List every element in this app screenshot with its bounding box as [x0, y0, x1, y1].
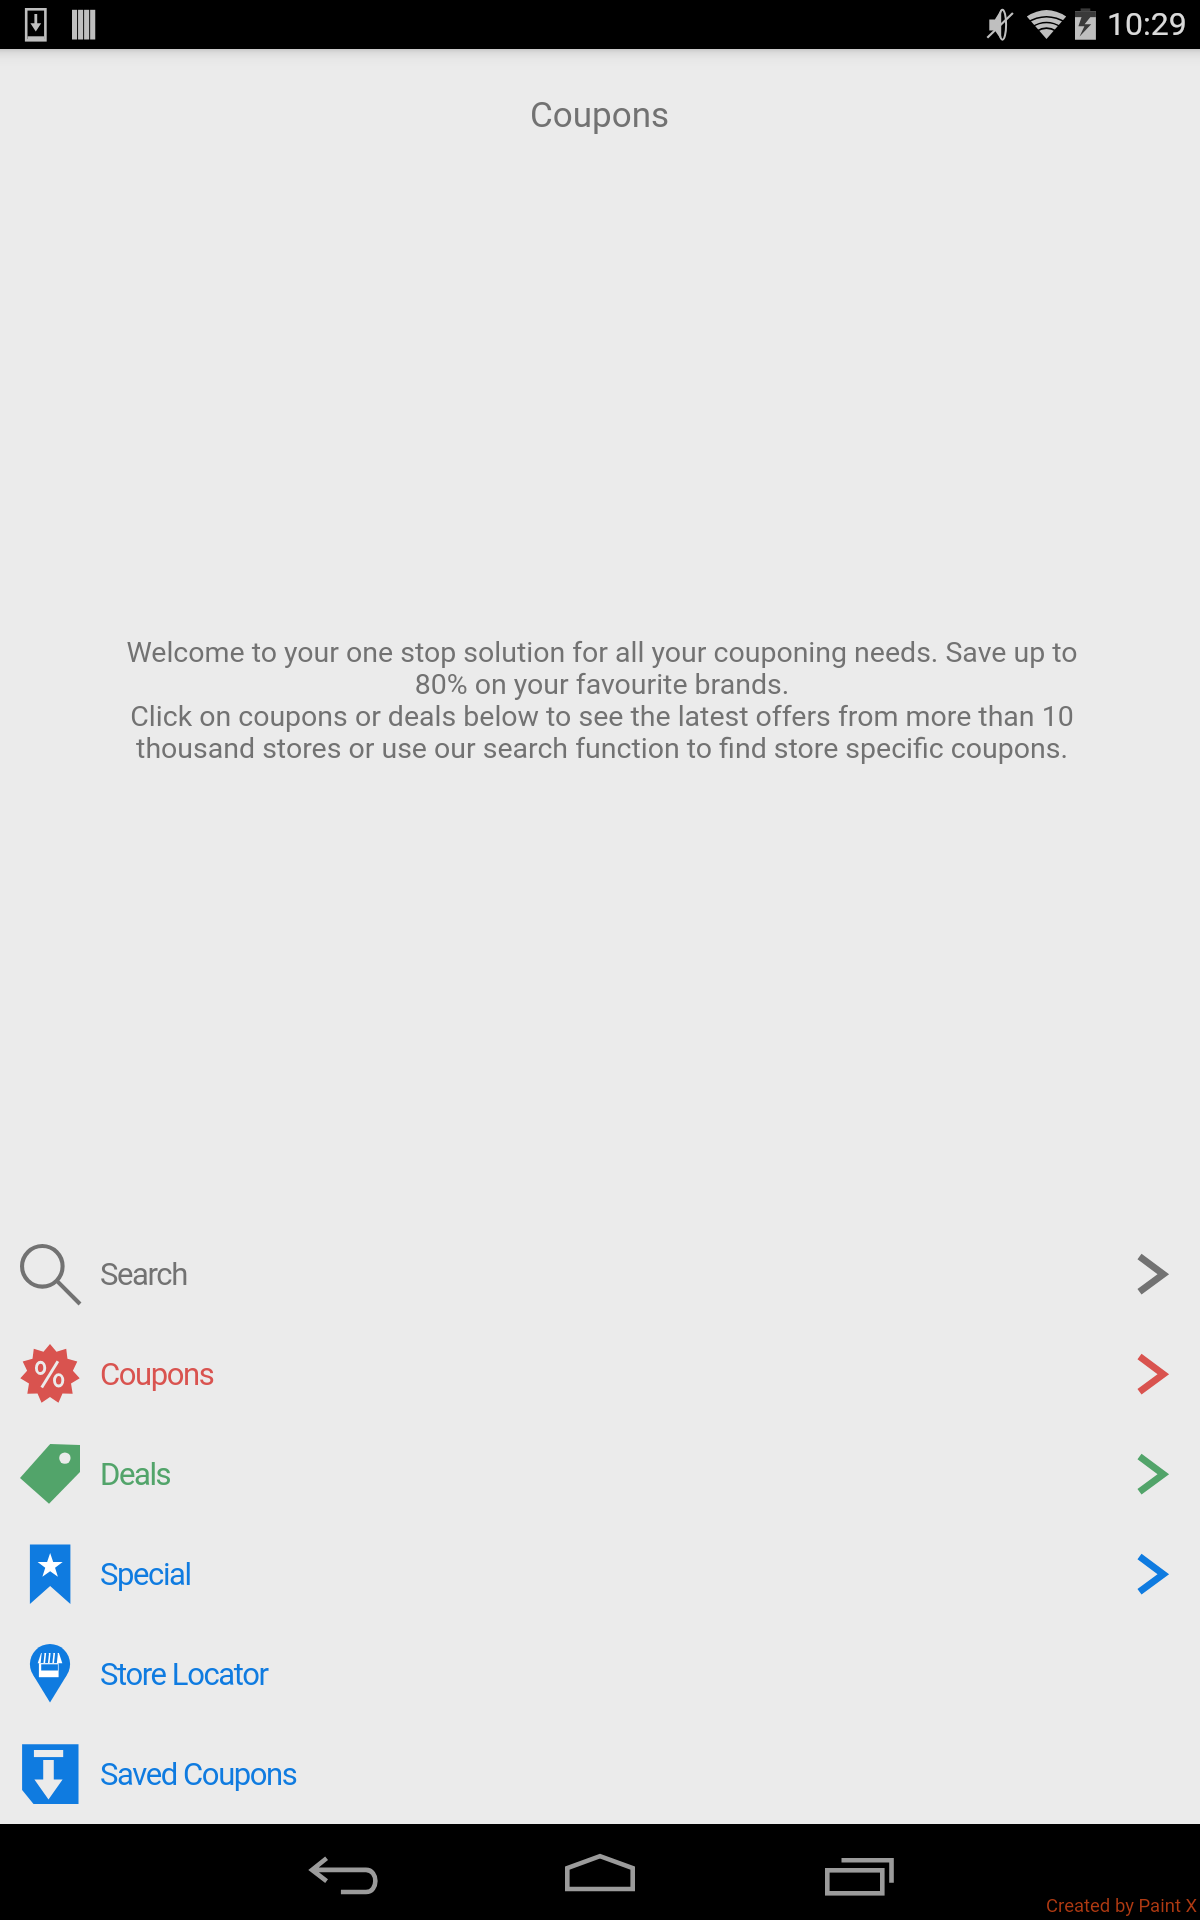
staticText: Special [100, 1556, 191, 1592]
button[interactable]: Coupons [0, 1324, 1200, 1424]
button[interactable]: Search [0, 1224, 1200, 1324]
button[interactable]: Special [0, 1524, 1200, 1624]
staticText: Created by Paint X [1046, 1895, 1198, 1917]
staticText: Coupons [100, 1356, 214, 1392]
staticText: Deals [100, 1456, 171, 1492]
staticText: Store Locator [100, 1656, 268, 1692]
staticText: Search [100, 1256, 187, 1292]
staticText: Saved Coupons [100, 1756, 297, 1792]
button[interactable]: Home [562, 1851, 638, 1895]
button[interactable]: Store Locator [0, 1624, 1200, 1724]
button[interactable]: Recent apps [820, 1854, 896, 1894]
button[interactable]: Deals [0, 1424, 1200, 1524]
button[interactable]: Saved Coupons [0, 1724, 1200, 1824]
staticText: Coupons [530, 95, 670, 136]
button[interactable]: Back [306, 1854, 382, 1894]
staticText: Welcome to your one stop solution for al… [110, 636, 1094, 765]
staticText: 10:29 [1107, 5, 1187, 43]
